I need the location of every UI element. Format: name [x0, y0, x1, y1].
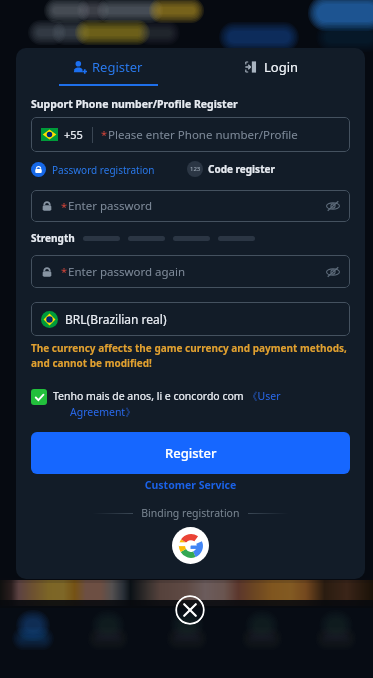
staticText: Register: [92, 58, 143, 76]
staticText: Agreement》: [70, 405, 136, 419]
button[interactable]: Register: [26, 48, 189, 86]
staticText: Code register: [208, 162, 275, 176]
button[interactable]: Toggle password visibility: [326, 199, 340, 213]
staticText: Tenho mais de anos, li e concordo com: [53, 389, 247, 403]
staticText: +55: [64, 127, 83, 142]
button[interactable]: Customer Service: [31, 478, 350, 492]
button[interactable]: Register: [31, 432, 350, 474]
staticText: *: [101, 127, 108, 142]
button[interactable]: *: [31, 190, 350, 222]
button[interactable]: Toggle password visibility: [326, 265, 340, 279]
button[interactable]: *: [31, 255, 350, 288]
button[interactable]: +55: [31, 117, 350, 152]
button[interactable]: Login: [189, 48, 353, 86]
staticText: *: [61, 199, 68, 214]
button[interactable]: Password registration: [31, 162, 155, 177]
button[interactable]: Sign in with Google: [172, 527, 209, 564]
staticText: The currency affects the game currency a…: [31, 341, 347, 369]
staticText: Enter password: [68, 198, 153, 214]
staticText: Binding registration: [133, 506, 248, 520]
staticText: Register: [165, 444, 217, 462]
button[interactable]: [31, 389, 47, 405]
staticText: Strength: [31, 231, 75, 245]
staticText: Support Phone number/Profile Register: [31, 97, 238, 111]
staticText: 123: [190, 165, 201, 173]
staticText: Password registration: [52, 163, 155, 177]
staticText: *: [61, 264, 68, 279]
staticText: Enter password again: [68, 264, 186, 280]
staticText: BRL(Brazilian real): [65, 311, 167, 327]
staticText: Login: [264, 58, 299, 76]
button[interactable]: 123: [187, 161, 275, 177]
button[interactable]: BRL(Brazilian real): [31, 302, 350, 336]
staticText: 《User: [247, 389, 281, 403]
staticText: Please enter Phone number/Profile: [108, 127, 298, 143]
button[interactable]: Close: [175, 595, 205, 625]
